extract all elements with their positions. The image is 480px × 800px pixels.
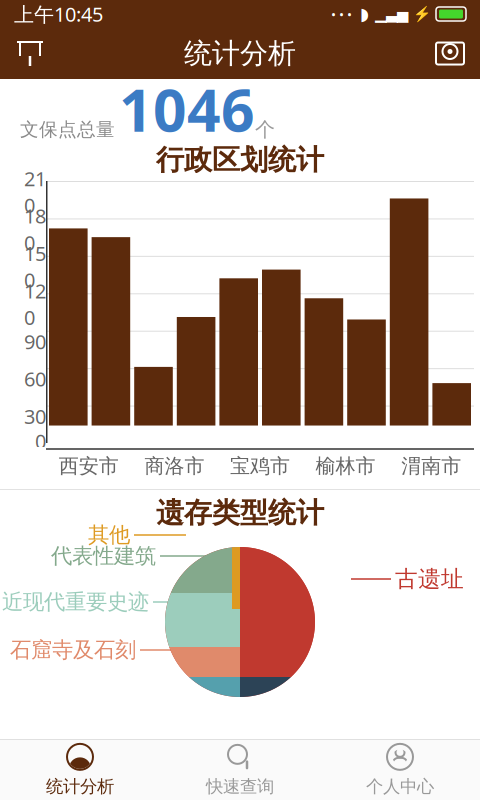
staticText: 30: [24, 403, 46, 430]
staticText: 60: [24, 366, 46, 392]
button[interactable]: 统计分析: [0, 737, 160, 800]
staticText: 行政区划统计: [156, 143, 324, 177]
staticText: 石窟寺及石刻: [10, 637, 136, 663]
staticText: 宝鸡市: [230, 454, 290, 478]
staticText: 榆林市: [316, 454, 376, 478]
staticText: 近现代重要史迹: [2, 589, 149, 615]
staticText: 渭南市: [401, 454, 461, 478]
staticText: • • •: [331, 5, 352, 23]
staticText: ◗: [360, 4, 369, 24]
staticText: 古遗址: [395, 565, 464, 593]
staticText: 上午10:45: [14, 1, 103, 27]
staticText: 210: [24, 165, 46, 218]
staticText: 代表性建筑: [51, 543, 156, 569]
staticText: 遗存类型统计: [156, 496, 324, 530]
staticText: ▁▃▅: [375, 6, 408, 22]
staticText: 150: [24, 240, 46, 293]
staticText: 90: [24, 328, 46, 355]
staticText: ⚡: [413, 6, 431, 22]
staticText: 统计分析: [46, 776, 114, 797]
button[interactable]: 快速查询: [160, 737, 320, 800]
staticText: 商洛市: [144, 454, 204, 478]
button[interactable]: 筛选: [8, 31, 52, 75]
staticText: 个: [255, 117, 275, 142]
staticText: 120: [24, 277, 46, 330]
staticText: 统计分析: [184, 36, 296, 71]
staticText: 西安市: [59, 454, 119, 478]
staticText: 快速查询: [206, 776, 274, 797]
staticText: 个人中心: [366, 776, 434, 797]
button[interactable]: 地图: [428, 31, 472, 75]
staticText: 其他: [88, 522, 130, 548]
staticText: 文保点总量: [20, 118, 115, 141]
staticText: 180: [24, 203, 46, 256]
staticText: 0: [35, 428, 46, 454]
staticText: 1046: [119, 70, 255, 148]
button[interactable]: 个人中心: [320, 737, 480, 800]
